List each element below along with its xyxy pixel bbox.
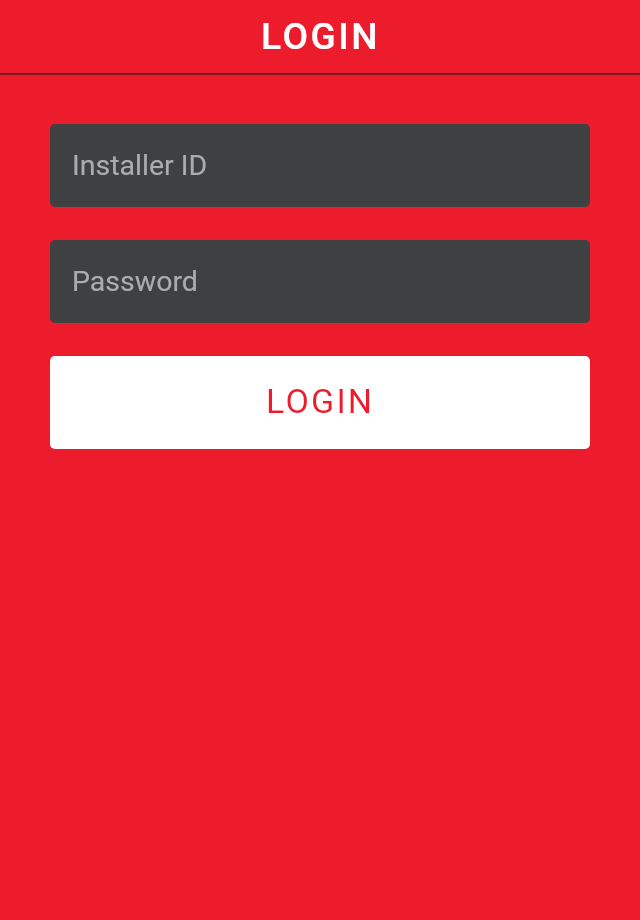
button[interactable]: LOGIN bbox=[50, 356, 590, 449]
button[interactable]: Installer ID bbox=[50, 124, 590, 207]
staticText: Password bbox=[72, 265, 198, 298]
staticText: LOGIN bbox=[266, 381, 375, 421]
button[interactable]: Password bbox=[50, 240, 590, 323]
staticText: Installer ID bbox=[72, 149, 208, 182]
staticText: LOGIN bbox=[261, 15, 380, 58]
